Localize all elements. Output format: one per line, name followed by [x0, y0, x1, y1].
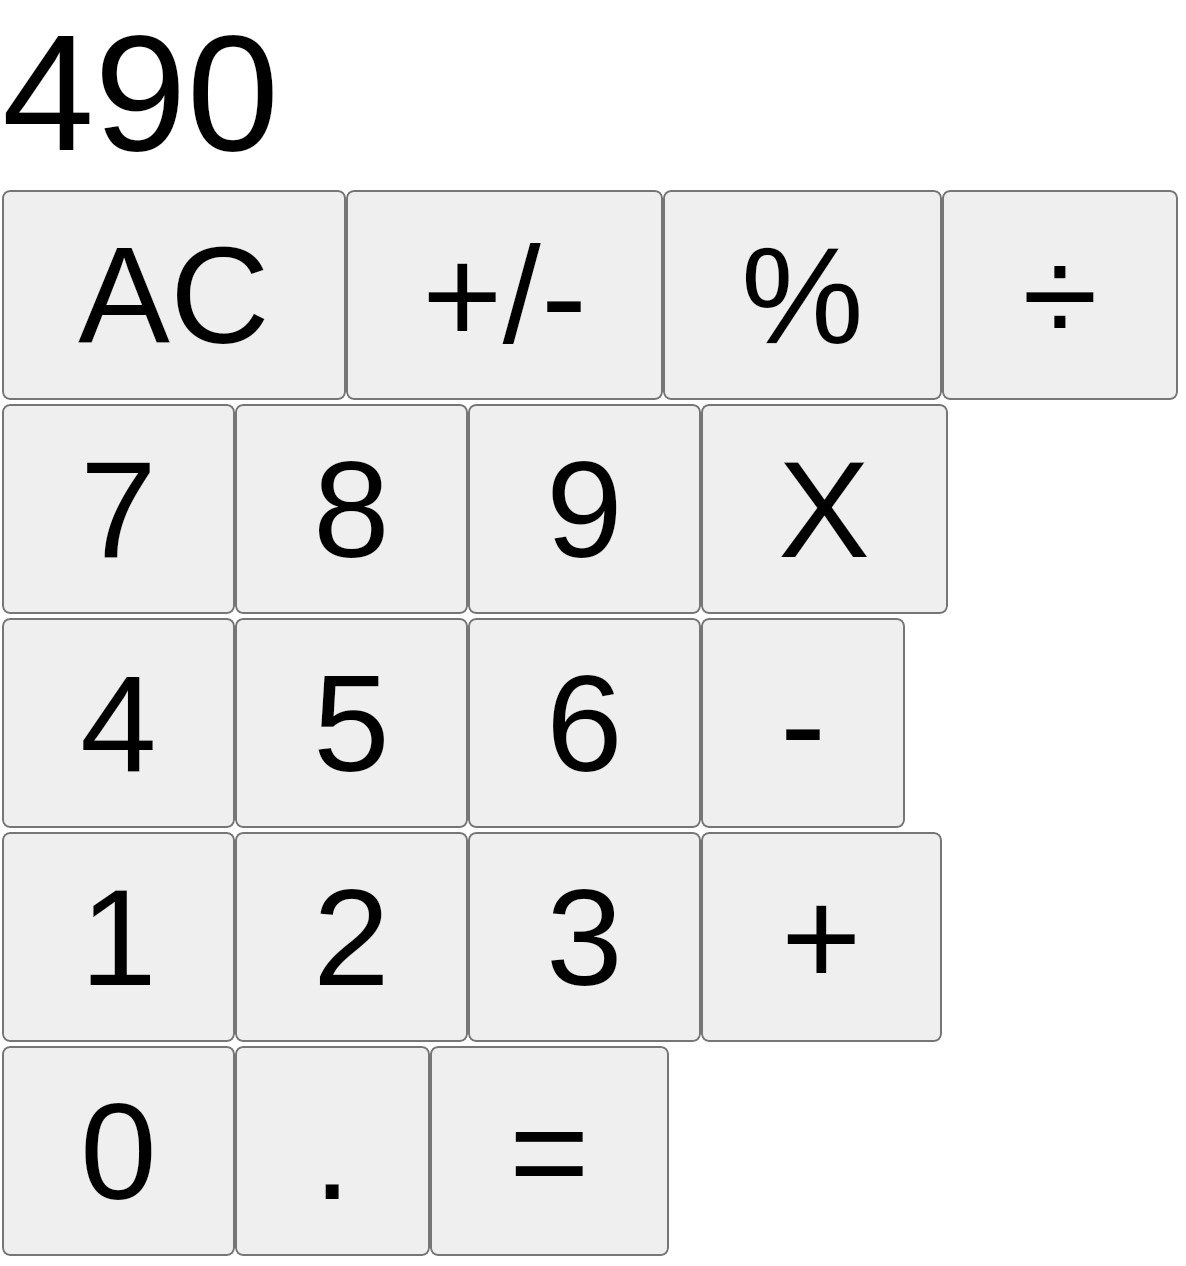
staticText: 0	[80, 1074, 157, 1228]
button[interactable]: 7	[2, 404, 235, 614]
button[interactable]: X	[701, 404, 948, 614]
button[interactable]: 0	[2, 1046, 235, 1256]
staticText: %	[741, 218, 864, 372]
staticText: 7	[80, 432, 157, 586]
staticText: 1	[80, 860, 157, 1014]
staticText: 2	[313, 860, 390, 1014]
button[interactable]: %	[663, 190, 942, 400]
button[interactable]: =	[430, 1046, 669, 1256]
button[interactable]: +	[701, 832, 942, 1042]
staticText: 4	[80, 646, 157, 800]
staticText: 3	[546, 860, 623, 1014]
staticText: AC	[78, 218, 270, 372]
button[interactable]: +/-	[346, 190, 663, 400]
staticText: .	[313, 1074, 352, 1228]
button[interactable]: 9	[468, 404, 701, 614]
staticText: X	[778, 432, 871, 586]
staticText: ÷	[1022, 218, 1098, 372]
button[interactable]: 5	[235, 618, 468, 828]
button[interactable]: ÷	[942, 190, 1178, 400]
button[interactable]: .	[235, 1046, 430, 1256]
staticText: 9	[546, 432, 623, 586]
button[interactable]: 4	[2, 618, 235, 828]
button[interactable]: 6	[468, 618, 701, 828]
button[interactable]: 8	[235, 404, 468, 614]
staticText: 8	[313, 432, 390, 586]
staticText: =	[509, 1074, 590, 1228]
staticText: 490	[2, 0, 279, 185]
staticText: +	[781, 860, 862, 1014]
staticText: +/-	[422, 218, 587, 372]
staticText: -	[780, 646, 826, 800]
staticText: 5	[313, 646, 390, 800]
button[interactable]: AC	[2, 190, 346, 400]
button[interactable]: 2	[235, 832, 468, 1042]
staticText: 6	[546, 646, 623, 800]
button[interactable]: 3	[468, 832, 701, 1042]
button[interactable]: -	[701, 618, 905, 828]
button[interactable]: 1	[2, 832, 235, 1042]
